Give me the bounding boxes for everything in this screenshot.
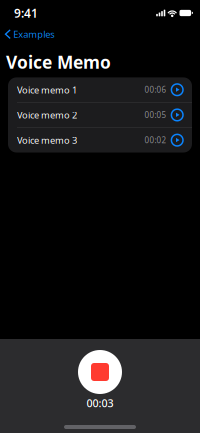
staticText: Examples — [13, 28, 54, 40]
staticText: Voice memo 2 — [17, 109, 77, 121]
staticText: Voice memo 1 — [17, 84, 77, 96]
button[interactable]: Examples — [0, 26, 54, 42]
staticText: 9:41 — [14, 5, 38, 21]
staticText: 00:05 — [144, 110, 166, 120]
button[interactable]: Voice memo 2 — [8, 103, 192, 127]
button[interactable]: Voice memo 1 — [8, 77, 192, 102]
staticText: Voice memo 3 — [17, 134, 77, 146]
staticText: 00:02 — [144, 135, 166, 145]
staticText: 00:06 — [144, 84, 166, 95]
staticText: Voice Memo — [6, 50, 111, 73]
button[interactable]: Voice memo 3 — [8, 128, 192, 152]
staticText: 00:03 — [86, 396, 113, 410]
button[interactable]: Stop recording — [78, 350, 122, 394]
